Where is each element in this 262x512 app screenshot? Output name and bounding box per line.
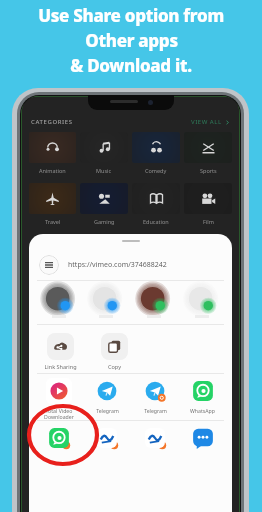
button[interactable]: Film [184, 183, 232, 229]
staticText: Sports [200, 167, 217, 174]
button[interactable]: App 0 [35, 425, 83, 455]
staticText: Gaming [94, 218, 115, 225]
button[interactable]: App 2 [131, 425, 179, 455]
button[interactable] [35, 287, 82, 318]
staticText: Education [143, 218, 169, 225]
button[interactable] [178, 287, 226, 318]
button[interactable]: Music [80, 132, 128, 178]
other: Menu [39, 255, 59, 275]
staticText: Telegram [96, 407, 119, 414]
staticText: Music [96, 167, 112, 174]
staticText: Comedy [145, 167, 167, 174]
staticText: Telegram [144, 407, 167, 414]
staticText: Other apps [85, 29, 178, 52]
staticText: Animation [39, 167, 66, 174]
staticText: Link Sharing [44, 363, 77, 370]
button[interactable]: App 3 [179, 425, 226, 455]
button[interactable] [130, 287, 178, 318]
button[interactable]: Telegram [131, 378, 179, 414]
button[interactable]: Comedy [132, 132, 180, 178]
button[interactable]: Telegram [83, 378, 131, 414]
staticText: VIEW ALL [191, 118, 222, 126]
other: App 2 [142, 425, 168, 451]
staticText: CATEGORIES [31, 118, 73, 126]
button[interactable] [82, 287, 130, 318]
staticText: Use Share option from [38, 4, 224, 27]
button[interactable]: WhatsApp [179, 378, 226, 414]
button[interactable]: Education [132, 183, 180, 229]
staticText: Total Video Downloader [44, 407, 74, 420]
staticText: & Download it. [70, 54, 192, 77]
staticText: https://vimeo.com/374688242 [68, 260, 167, 270]
button[interactable]: Gaming [80, 183, 128, 229]
staticText: Travel [45, 218, 61, 225]
button[interactable]: Link Sharing [41, 333, 79, 370]
button[interactable]: Travel [29, 183, 76, 229]
button[interactable]: App 1 [83, 425, 131, 455]
button[interactable]: Copy [95, 333, 133, 370]
other: App 0 [46, 425, 72, 451]
button[interactable]: Animation [29, 132, 76, 178]
button[interactable]: Total Video Downloader [35, 378, 83, 420]
other: App 3 [190, 425, 216, 451]
staticText: Copy [108, 363, 121, 370]
staticText: Film [203, 218, 214, 225]
button[interactable]: VIEW ALL [191, 118, 230, 126]
staticText: WhatsApp [190, 407, 215, 414]
button[interactable]: Menu [39, 255, 222, 275]
button[interactable]: Sports [184, 132, 232, 178]
other: App 1 [94, 425, 120, 451]
